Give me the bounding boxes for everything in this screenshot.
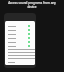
staticText: Access sound programs from any device: [8, 1, 56, 8]
button[interactable]: [5, 40, 35, 44]
button[interactable]: [5, 48, 35, 51]
button[interactable]: [5, 28, 35, 32]
button[interactable]: [5, 51, 35, 54]
button[interactable]: [5, 24, 35, 28]
button[interactable]: [5, 36, 35, 40]
button[interactable]: [5, 44, 35, 48]
button[interactable]: [5, 32, 35, 36]
button[interactable]: [5, 54, 35, 57]
button[interactable]: [5, 57, 35, 60]
